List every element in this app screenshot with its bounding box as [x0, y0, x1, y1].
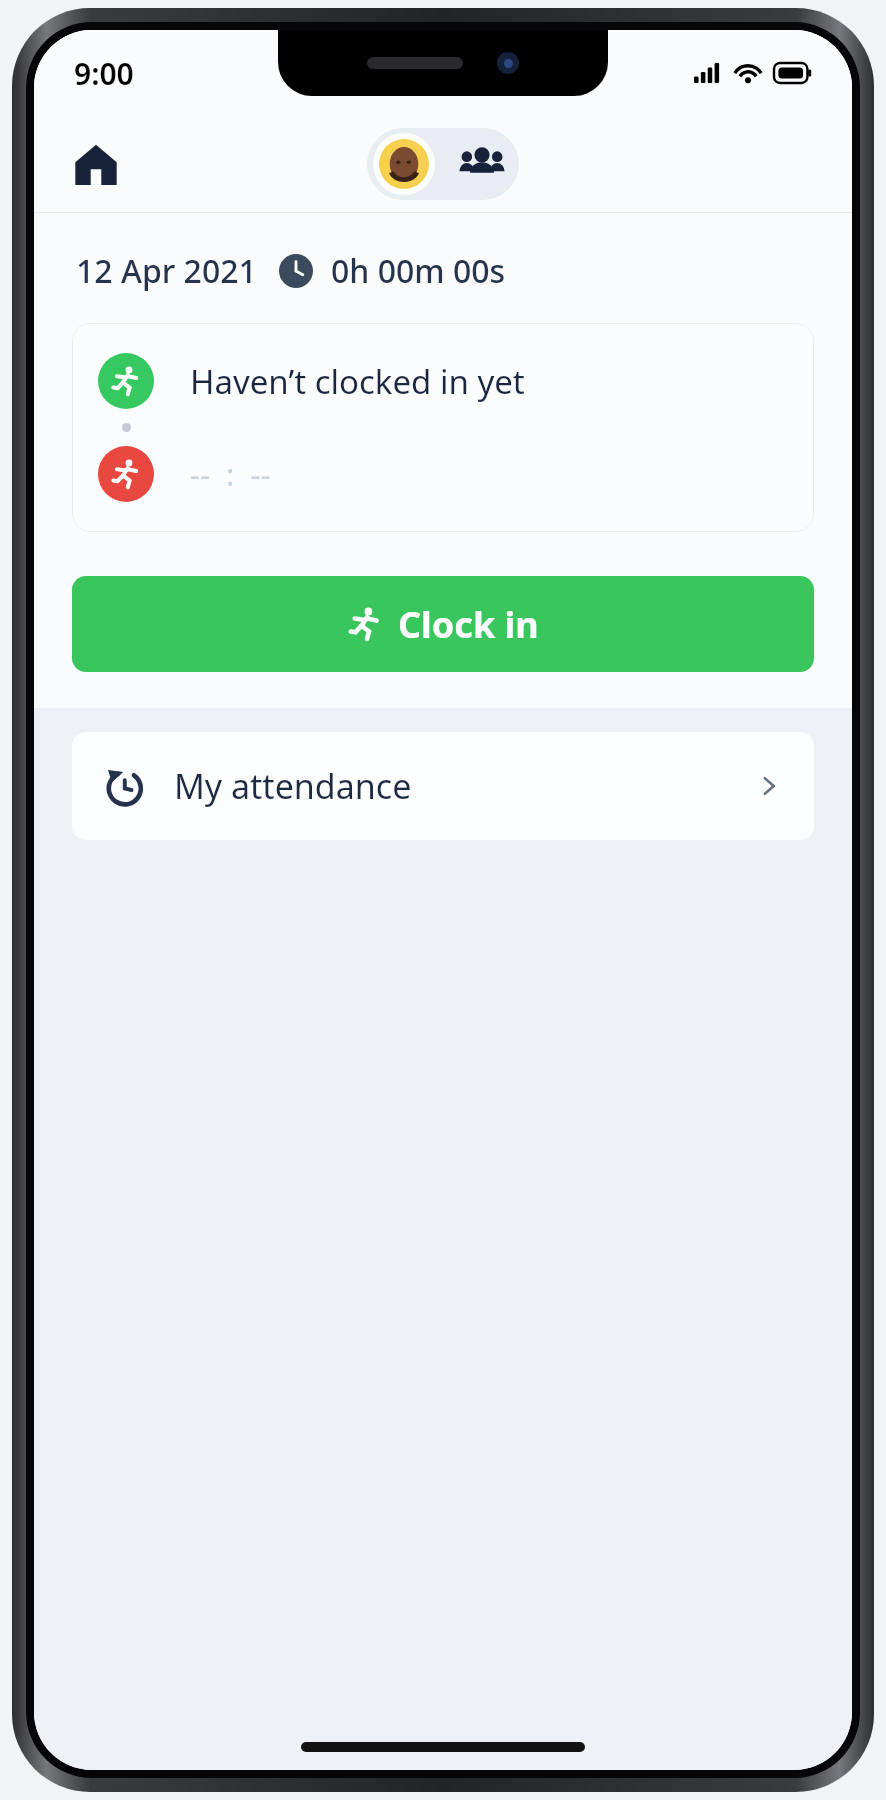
staticText: 9:00 — [74, 53, 134, 94]
button[interactable]: Home — [60, 128, 132, 200]
staticText: 0h 00m 00s — [331, 249, 506, 293]
button[interactable]: My profile — [367, 128, 519, 200]
button[interactable]: Team — [451, 133, 513, 195]
button[interactable]: Clock in — [72, 576, 814, 672]
staticText: My attendance — [174, 763, 412, 809]
staticText: Haven’t clocked in yet — [190, 359, 525, 404]
button[interactable]: My attendance — [72, 732, 814, 840]
staticText: 12 Apr 2021 — [76, 249, 257, 293]
button[interactable]: Haven’t clocked in yet — [72, 323, 814, 532]
staticText: -- : -- — [190, 453, 271, 495]
button[interactable]: My profile — [373, 133, 435, 195]
staticText: Clock in — [398, 600, 539, 649]
